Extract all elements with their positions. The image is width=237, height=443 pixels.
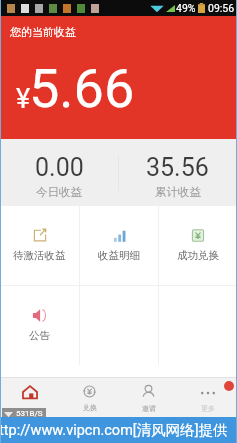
staticText: 今日收益: [36, 185, 82, 199]
staticText: 5.66: [29, 57, 135, 120]
button[interactable]: 兑换: [60, 377, 119, 417]
staticText: 兑换: [83, 403, 97, 412]
staticText: 公告: [29, 329, 50, 342]
button[interactable]: 邀请: [119, 377, 178, 417]
staticText: 35.56: [146, 153, 209, 182]
button[interactable]: Home: [0, 377, 60, 417]
staticText: 累计收益: [155, 185, 201, 199]
staticText: ttp://www.vipcn.com[清风网络]提供: [0, 421, 228, 439]
button[interactable]: 待激活收益: [0, 206, 79, 285]
button[interactable]: 成功兑换: [159, 206, 237, 285]
staticText: ¥: [16, 83, 31, 115]
staticText: 您的当前收益: [10, 25, 76, 39]
staticText: 邀请: [142, 404, 156, 413]
button[interactable]: 35.56: [118, 139, 237, 206]
staticText: 收益明细: [98, 249, 140, 262]
button[interactable]: 更多: [178, 377, 237, 417]
staticText: 0.00: [35, 153, 84, 182]
button[interactable]: 收益明细: [80, 206, 158, 285]
button[interactable]: 公告: [0, 286, 79, 365]
staticText: 成功兑换: [177, 249, 219, 262]
staticText: 531B/S: [16, 409, 43, 418]
staticText: 09:56: [208, 2, 235, 14]
staticText: 49%: [176, 2, 196, 14]
staticText: 待激活收益: [13, 249, 66, 262]
button[interactable]: 0.00: [0, 139, 118, 206]
staticText: 更多: [201, 404, 215, 413]
